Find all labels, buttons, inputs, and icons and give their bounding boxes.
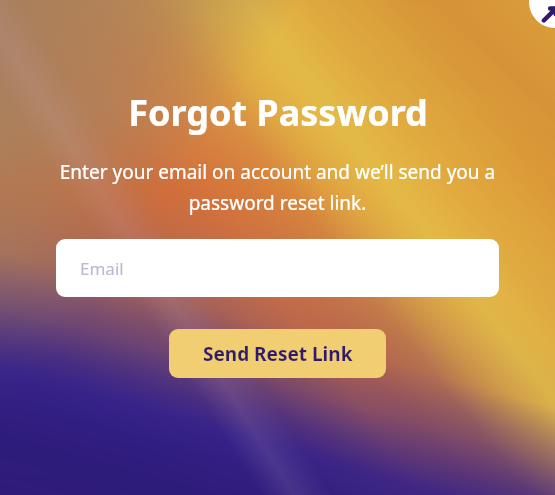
- staticText: Send Reset Link: [203, 341, 353, 367]
- button[interactable]: Send Reset Link: [169, 329, 386, 378]
- staticText: Email: [80, 257, 124, 280]
- button[interactable]: Back: [529, 0, 555, 28]
- staticText: Forgot Password: [128, 88, 428, 137]
- button[interactable]: Email: [56, 239, 499, 297]
- staticText: Enter your email on account and we’ll se…: [48, 159, 507, 215]
